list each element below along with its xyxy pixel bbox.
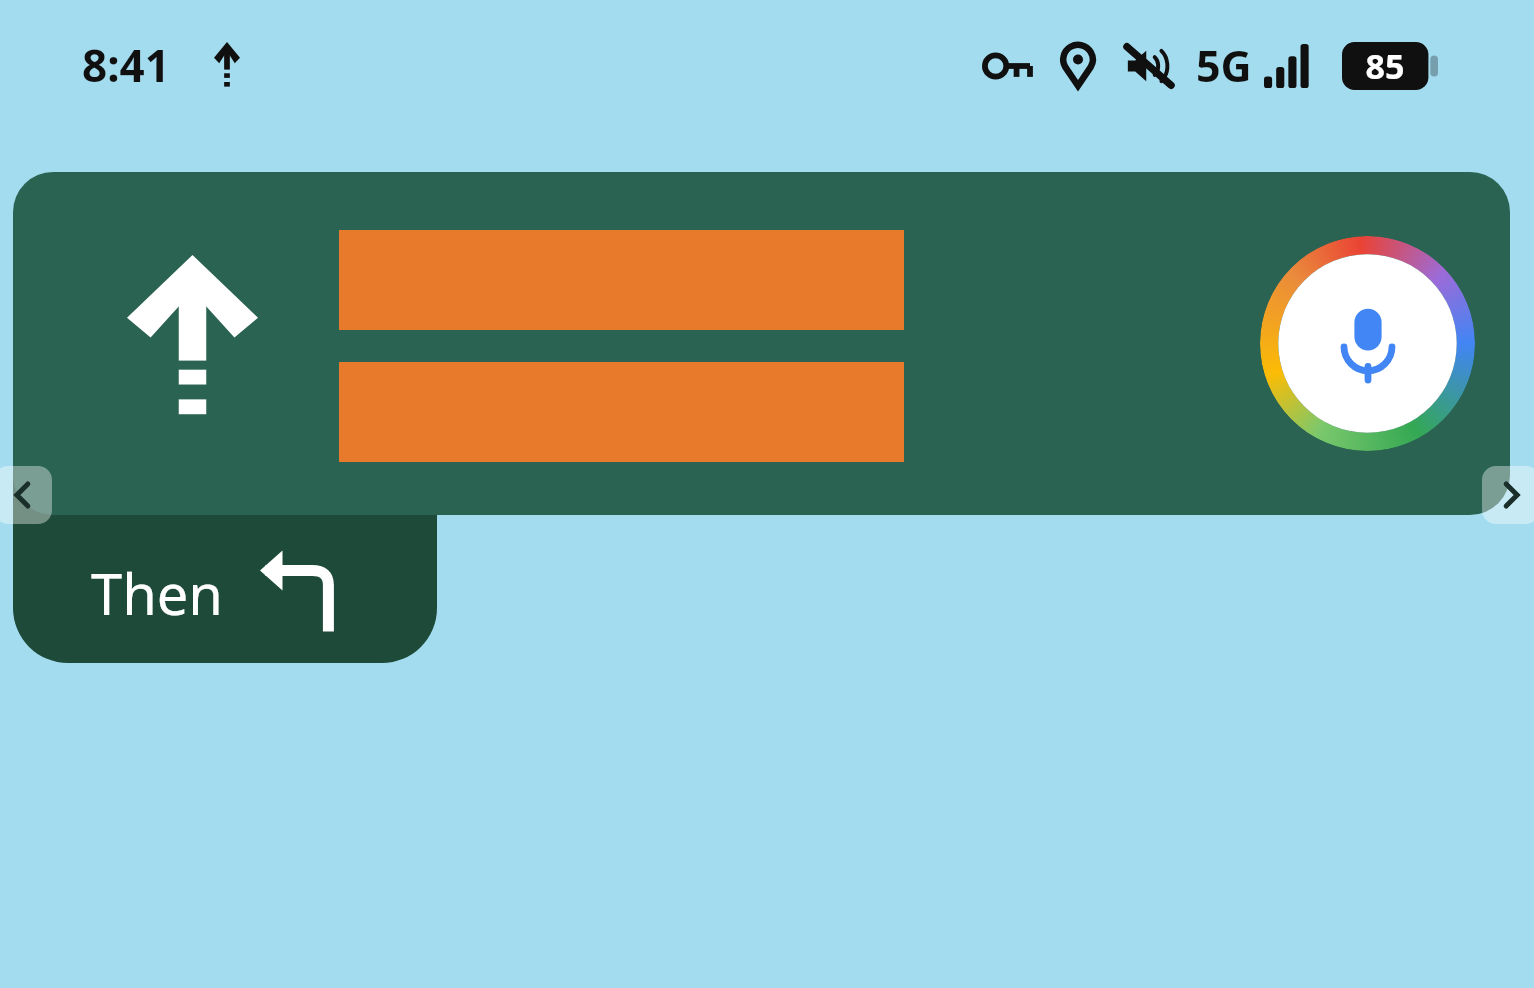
staticText: 5G — [1196, 36, 1252, 95]
staticText: 85 — [1342, 43, 1428, 89]
button[interactable]: Google Assistant — [1260, 236, 1475, 451]
button[interactable]: Then — [13, 430, 437, 663]
staticText: 8:41 — [82, 35, 170, 95]
button[interactable]: Google Assistant — [13, 172, 1510, 515]
button[interactable]: Next — [1482, 466, 1534, 524]
button[interactable]: Previous — [0, 466, 52, 524]
staticText: Then — [91, 555, 223, 631]
